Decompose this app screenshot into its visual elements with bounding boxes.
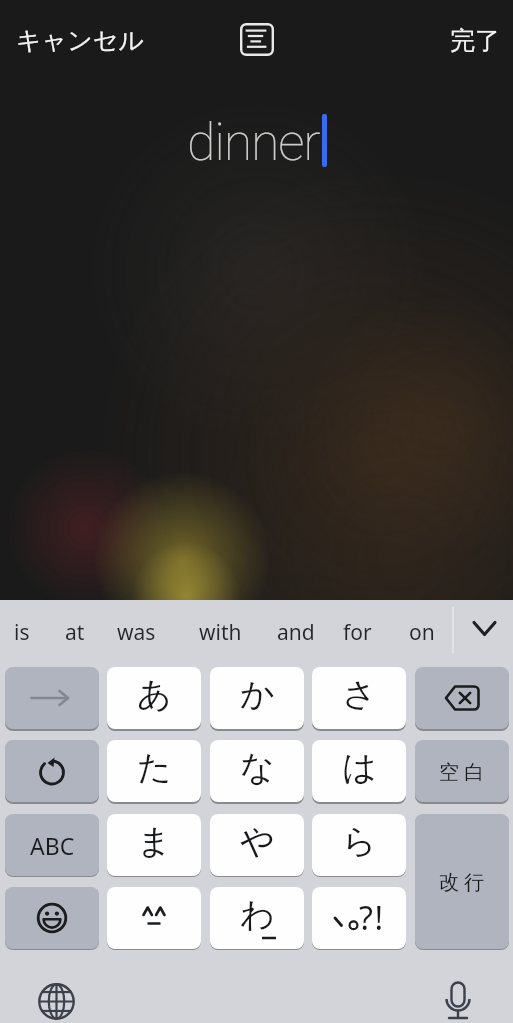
button[interactable]: は <box>312 740 406 802</box>
staticText: dinner <box>187 112 320 173</box>
staticText: 空 白 <box>439 758 485 785</box>
button[interactable]: 空 白 <box>415 740 509 802</box>
staticText: ?! <box>359 896 385 940</box>
button[interactable]: ?! <box>312 887 406 949</box>
button[interactable] <box>31 976 81 1023</box>
staticText: for <box>343 618 372 647</box>
button[interactable]: さ <box>312 667 406 729</box>
button[interactable] <box>5 667 99 729</box>
button[interactable] <box>415 667 509 729</box>
button[interactable]: is <box>14 602 30 663</box>
button[interactable]: や <box>210 814 304 876</box>
staticText: at <box>65 618 85 647</box>
button[interactable]: 完了 <box>444 20 494 51</box>
button[interactable] <box>5 740 99 802</box>
button[interactable]: 改 行 <box>415 814 509 949</box>
staticText: は <box>342 746 377 789</box>
staticText: on <box>409 618 435 647</box>
button[interactable] <box>5 887 99 949</box>
button[interactable]: ま <box>107 814 201 876</box>
staticText: 完了 <box>450 25 500 56</box>
staticText: and <box>277 618 315 647</box>
button[interactable] <box>236 18 278 60</box>
button[interactable]: ABC <box>5 814 99 876</box>
staticText: さ <box>342 673 377 716</box>
button[interactable]: キャンセル <box>10 20 138 51</box>
button[interactable]: た <box>107 740 201 802</box>
button[interactable]: for <box>343 602 372 663</box>
staticText: わ <box>240 893 275 936</box>
button[interactable]: at <box>65 602 85 663</box>
staticText: 改 行 <box>439 868 485 895</box>
staticText: was <box>117 618 156 647</box>
button[interactable]: あ <box>107 667 201 729</box>
button[interactable]: か <box>210 667 304 729</box>
button[interactable] <box>107 887 201 949</box>
staticText: た <box>137 746 172 789</box>
button[interactable] <box>433 976 483 1023</box>
staticText: か <box>240 673 275 716</box>
staticText: ま <box>137 820 172 863</box>
staticText: ABC <box>30 830 75 861</box>
button[interactable]: with <box>199 602 242 663</box>
staticText: や <box>240 820 275 863</box>
button[interactable] <box>462 608 506 648</box>
staticText: ら <box>342 820 377 863</box>
staticText: な <box>240 746 275 789</box>
staticText: with <box>199 618 242 647</box>
button[interactable]: ら <box>312 814 406 876</box>
staticText: is <box>14 618 30 647</box>
staticText: あ <box>137 673 172 716</box>
staticText: キャンセル <box>16 25 144 56</box>
button[interactable]: was <box>117 602 156 663</box>
button[interactable]: わ <box>210 887 304 949</box>
button[interactable]: and <box>277 602 315 663</box>
button[interactable]: on <box>409 602 435 663</box>
button[interactable]: な <box>210 740 304 802</box>
